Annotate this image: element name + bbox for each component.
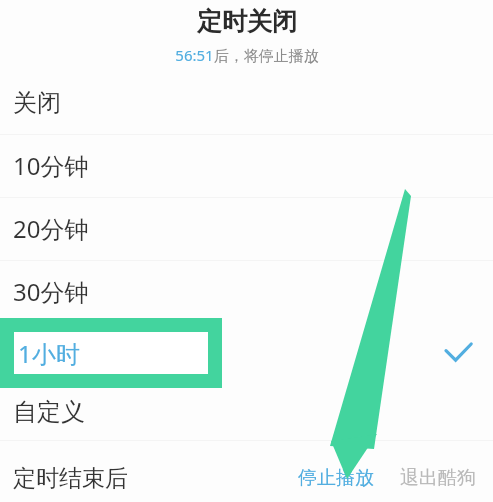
staticText: 定时关闭	[197, 6, 297, 37]
button[interactable]: 停止播放	[298, 460, 374, 496]
staticText: 20分钟	[13, 212, 89, 245]
button[interactable]: 10分钟	[0, 134, 493, 196]
button[interactable]: 关闭	[0, 72, 493, 134]
staticText: 30分钟	[13, 275, 89, 308]
button[interactable]: 20分钟	[0, 197, 493, 259]
staticText: 定时结束后	[13, 464, 128, 493]
staticText: 1小时	[18, 337, 80, 370]
staticText: 关闭	[13, 88, 61, 118]
staticText: 56:51后，将停止播放	[175, 45, 319, 65]
button[interactable]: 定时结束后	[13, 458, 128, 498]
button[interactable]: 30分钟	[0, 260, 493, 322]
staticText: 停止播放	[298, 466, 374, 490]
staticText: 退出酷狗	[400, 466, 476, 490]
staticText: 自定义	[13, 397, 85, 427]
button[interactable]: 自定义	[0, 381, 493, 443]
button[interactable]: 1小时	[0, 318, 222, 388]
button[interactable]: 已选中	[434, 329, 482, 377]
button[interactable]: 退出酷狗	[400, 460, 476, 496]
staticText: 10分钟	[13, 149, 89, 182]
